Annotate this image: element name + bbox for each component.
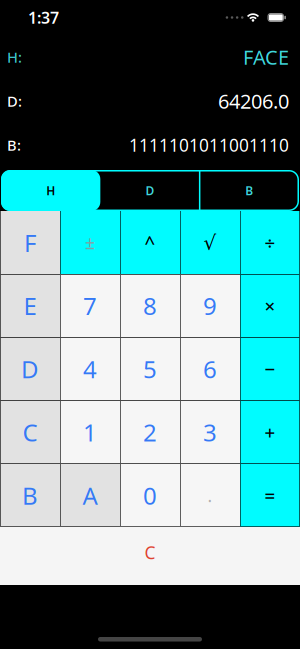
staticText: × [264, 293, 275, 318]
staticText: F [24, 227, 36, 259]
button[interactable]: 5 [120, 337, 180, 401]
staticText: H [46, 182, 55, 198]
staticText: FACE [243, 44, 289, 70]
staticText: H: [7, 47, 22, 67]
button[interactable]: ÷ [240, 211, 300, 274]
button[interactable]: = [240, 464, 300, 527]
button[interactable]: 2 [120, 401, 180, 464]
button[interactable]: 9 [180, 274, 240, 337]
staticText: 7 [83, 290, 97, 322]
staticText: ± [85, 231, 95, 254]
button[interactable]: + [240, 401, 300, 464]
button[interactable]: 1 [60, 401, 120, 464]
button[interactable]: C [0, 401, 60, 464]
button[interactable]: ± [60, 211, 120, 274]
button[interactable]: D [100, 170, 200, 211]
staticText: √ [203, 231, 216, 254]
button[interactable]: 4 [60, 337, 120, 401]
button[interactable]: 8 [120, 274, 180, 337]
staticText: 1111101011001110 [129, 133, 289, 156]
button[interactable]: F [0, 211, 60, 274]
button[interactable]: H [1, 170, 100, 211]
button[interactable]: C [0, 527, 300, 585]
staticText: + [264, 420, 275, 445]
staticText: 5 [143, 353, 157, 385]
staticText: C [22, 416, 37, 448]
staticText: 8 [143, 290, 157, 322]
staticText: 0 [143, 479, 157, 511]
staticText: 64206.0 [218, 88, 289, 114]
button[interactable]: 6 [180, 337, 240, 401]
button[interactable]: − [240, 337, 300, 401]
staticText: . [207, 484, 212, 507]
staticText: 2 [143, 416, 157, 448]
button[interactable]: E [0, 274, 60, 337]
button[interactable]: A [60, 464, 120, 527]
staticText: B [22, 479, 38, 511]
staticText: D: [7, 91, 22, 111]
button[interactable]: ^ [120, 211, 180, 274]
staticText: 4 [83, 353, 97, 385]
staticText: C [144, 541, 155, 564]
button[interactable]: 3 [180, 401, 240, 464]
staticText: 3 [203, 416, 217, 448]
staticText: B: [7, 135, 21, 155]
staticText: ^ [144, 230, 155, 255]
staticText: − [264, 357, 275, 381]
staticText: D [145, 182, 154, 198]
staticText: A [82, 479, 97, 511]
button[interactable]: × [240, 274, 300, 337]
staticText: B [245, 182, 253, 198]
button[interactable]: 0 [120, 464, 180, 527]
staticText: 6 [203, 353, 217, 385]
staticText: 9 [203, 290, 217, 322]
staticText: 1 [83, 416, 97, 448]
button[interactable]: . [180, 464, 240, 527]
button[interactable]: D [0, 337, 60, 401]
button[interactable]: 7 [60, 274, 120, 337]
button[interactable]: √ [180, 211, 240, 274]
staticText: 1:37 [28, 7, 59, 28]
button[interactable]: B [0, 464, 60, 527]
button[interactable]: B [200, 170, 299, 211]
staticText: = [264, 483, 275, 508]
staticText: E [23, 290, 36, 322]
staticText: ÷ [264, 230, 275, 255]
staticText: D [21, 353, 39, 385]
